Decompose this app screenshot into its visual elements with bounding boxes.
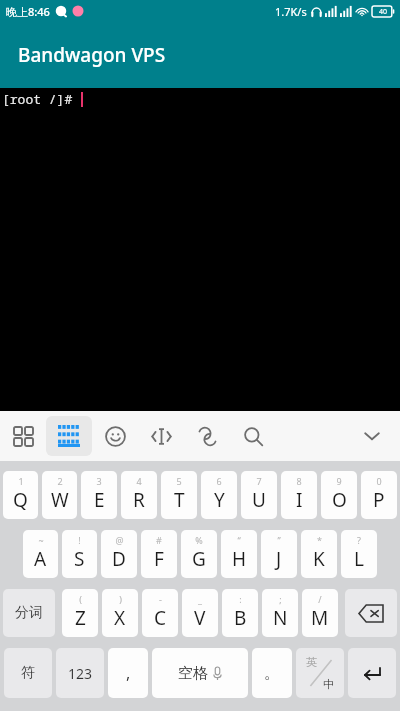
button[interactable]: Apps [0, 416, 46, 456]
staticText: A [34, 546, 47, 572]
button[interactable]: 4 [121, 471, 157, 519]
button[interactable]: Enter [348, 648, 396, 698]
staticText: 1.7K/s [275, 4, 307, 19]
staticText: 40 [379, 7, 388, 17]
staticText: F [154, 546, 164, 572]
staticText: T [174, 487, 185, 513]
staticText: 9 [336, 475, 342, 487]
staticText: G [192, 546, 206, 572]
staticText: 2 [57, 475, 63, 487]
button[interactable]: Keyboard [46, 416, 92, 456]
staticText: L [354, 546, 364, 572]
staticText: 。 [264, 663, 280, 683]
staticText: R [133, 487, 145, 513]
staticText: 4 [136, 475, 142, 487]
staticText: ( [79, 593, 82, 605]
button[interactable]: ( [62, 589, 98, 637]
button[interactable]: 7 [241, 471, 277, 519]
staticText: , [126, 662, 131, 684]
button[interactable]: @ [101, 530, 137, 578]
staticText: [root /]# [2, 90, 81, 108]
button[interactable]: 2 [42, 471, 77, 519]
staticText: K [313, 546, 325, 572]
button[interactable]: / [302, 589, 338, 637]
button[interactable]: 0 [361, 471, 397, 519]
button[interactable]: ; [262, 589, 298, 637]
staticText: # [156, 534, 162, 546]
button[interactable]: 6 [201, 471, 237, 519]
staticText: W [51, 487, 69, 513]
staticText: C [154, 605, 167, 631]
staticText: * [317, 534, 322, 546]
button[interactable]: * [301, 530, 337, 578]
button[interactable]: 空格 [152, 648, 248, 698]
staticText: “ [237, 534, 241, 546]
staticText: ? [357, 534, 361, 546]
staticText: 分词 [15, 604, 43, 622]
button[interactable]: , [108, 648, 148, 698]
staticText: 1 [18, 475, 24, 487]
button[interactable]: 。 [252, 648, 292, 698]
button[interactable]: Backspace [345, 589, 397, 637]
staticText: % [195, 534, 203, 546]
button[interactable]: 9 [321, 471, 357, 519]
staticText: 英 [306, 655, 317, 669]
staticText: Y [214, 487, 225, 513]
button[interactable]: 3 [81, 471, 117, 519]
staticText: 空格 [178, 664, 208, 683]
staticText: : [239, 593, 242, 605]
staticText: J [276, 546, 282, 572]
button[interactable]: Search [230, 416, 276, 456]
staticText: 晚上8:46 [6, 4, 50, 19]
staticText: D [112, 546, 126, 572]
staticText: - [159, 593, 162, 605]
staticText: 5 [176, 475, 182, 487]
button[interactable]: _ [182, 589, 218, 637]
staticText: 123 [68, 664, 93, 683]
button[interactable]: # [141, 530, 177, 578]
staticText: ” [277, 534, 281, 546]
staticText: 0 [376, 475, 382, 487]
staticText: N [273, 605, 288, 631]
button[interactable]: 符 [4, 648, 52, 698]
button[interactable]: ) [102, 589, 138, 637]
staticText: U [252, 487, 266, 513]
staticText: ! [78, 534, 81, 546]
staticText: O [332, 487, 347, 513]
staticText: _ [198, 593, 202, 605]
staticText: @ [115, 534, 124, 546]
staticText: M [311, 605, 329, 631]
staticText: H [232, 546, 247, 572]
button[interactable]: Clipboard [184, 416, 230, 456]
staticText: X [114, 605, 126, 631]
staticText: ~ [38, 534, 44, 546]
button[interactable]: Hide keyboard [350, 414, 394, 458]
button[interactable]: 分词 [3, 589, 55, 637]
button[interactable]: Emoji [92, 416, 138, 456]
button[interactable]: ? [341, 530, 377, 578]
button[interactable]: ~ [23, 530, 58, 578]
button[interactable]: 123 [56, 648, 104, 698]
staticText: Z [75, 605, 86, 631]
button[interactable]: Text cursor [138, 416, 184, 456]
staticText: V [194, 605, 206, 631]
staticText: 3 [96, 475, 102, 487]
staticText: 符 [21, 664, 35, 682]
staticText: E [94, 487, 105, 513]
staticText: B [234, 605, 247, 631]
button[interactable]: ” [261, 530, 297, 578]
staticText: 中 [323, 677, 334, 691]
button[interactable]: “ [221, 530, 257, 578]
button[interactable]: 1 [3, 471, 38, 519]
button[interactable]: % [181, 530, 217, 578]
button[interactable]: 5 [161, 471, 197, 519]
staticText: S [74, 546, 85, 572]
button[interactable]: Switch language [296, 648, 344, 698]
button[interactable]: : [222, 589, 258, 637]
staticText: ) [119, 593, 122, 605]
staticText: Bandwagon VPS [18, 42, 166, 68]
button[interactable]: - [142, 589, 178, 637]
button[interactable]: ! [62, 530, 97, 578]
button[interactable]: 8 [281, 471, 317, 519]
staticText: I [296, 487, 303, 513]
